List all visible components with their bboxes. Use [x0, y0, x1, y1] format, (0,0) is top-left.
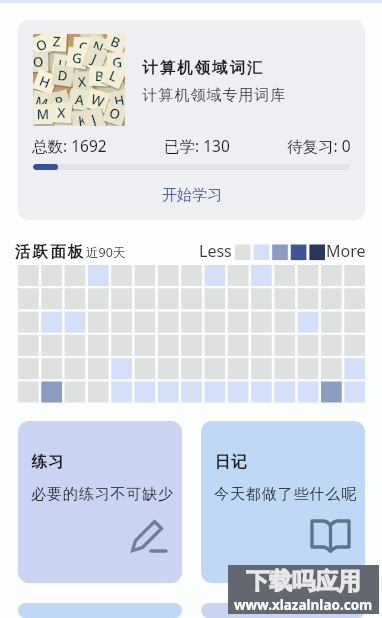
staticText: 必要的练习不可缺少 — [31, 485, 175, 504]
staticText: 计算机领域专用词库 — [142, 86, 286, 105]
staticText: 活跃面板 — [15, 242, 86, 262]
staticText: More — [326, 240, 366, 262]
staticText: 已学: 130 — [164, 135, 230, 156]
staticText: 近90天 — [86, 244, 126, 261]
staticText: Less — [199, 240, 232, 262]
staticText: 开始学习 — [162, 186, 222, 205]
staticText: 日记 — [214, 452, 247, 472]
staticText: 下载吗应用 — [246, 567, 361, 596]
button[interactable]: 开始学习 — [18, 178, 365, 212]
other: Practice — [131, 517, 168, 554]
staticText: 练习 — [31, 452, 64, 472]
button[interactable]: 计算机领域词汇 — [18, 20, 365, 220]
staticText: 总数: 1692 — [32, 135, 107, 156]
staticText: 待复习: 0 — [287, 135, 351, 156]
other: Diary — [310, 517, 351, 554]
button[interactable]: 日记 — [201, 421, 365, 583]
button[interactable] — [18, 603, 182, 618]
button[interactable] — [201, 603, 365, 618]
button[interactable]: 练习 — [18, 421, 182, 583]
staticText: 计算机领域词汇 — [142, 58, 265, 78]
staticText: www.xlazalnlao.com — [234, 596, 373, 614]
staticText: 今天都做了些什么呢 — [214, 485, 358, 504]
